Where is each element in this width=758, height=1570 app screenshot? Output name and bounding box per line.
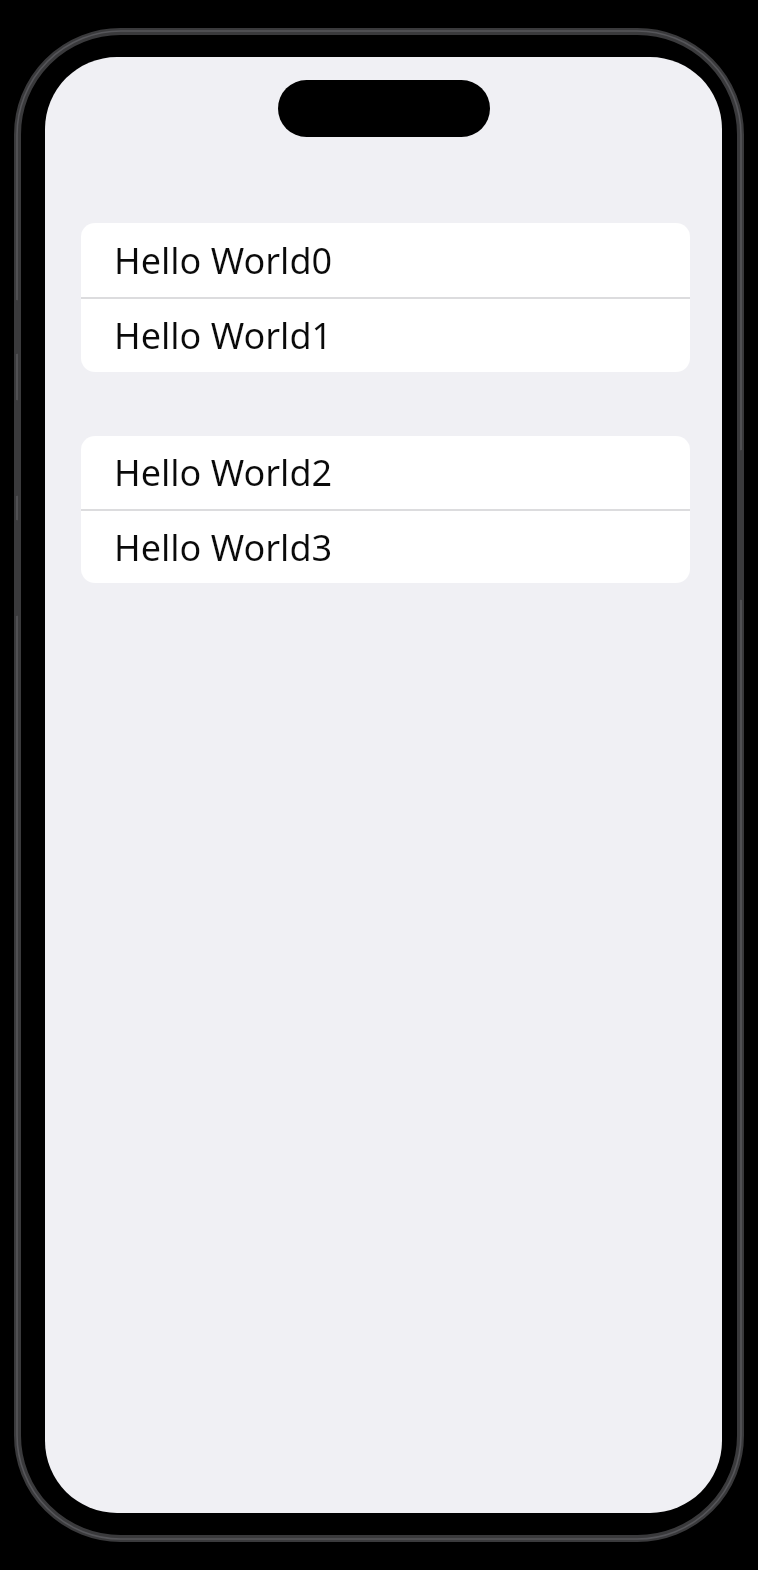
staticText: Hello World3: [114, 523, 333, 572]
staticText: Hello World2: [114, 448, 333, 497]
button[interactable]: Hello World0: [81, 223, 690, 297]
staticText: Hello World1: [114, 311, 333, 360]
staticText: Hello World0: [114, 236, 333, 285]
button[interactable]: Hello World3: [81, 511, 690, 583]
button[interactable]: Hello World2: [81, 436, 690, 509]
button[interactable]: Hello World1: [81, 299, 690, 372]
